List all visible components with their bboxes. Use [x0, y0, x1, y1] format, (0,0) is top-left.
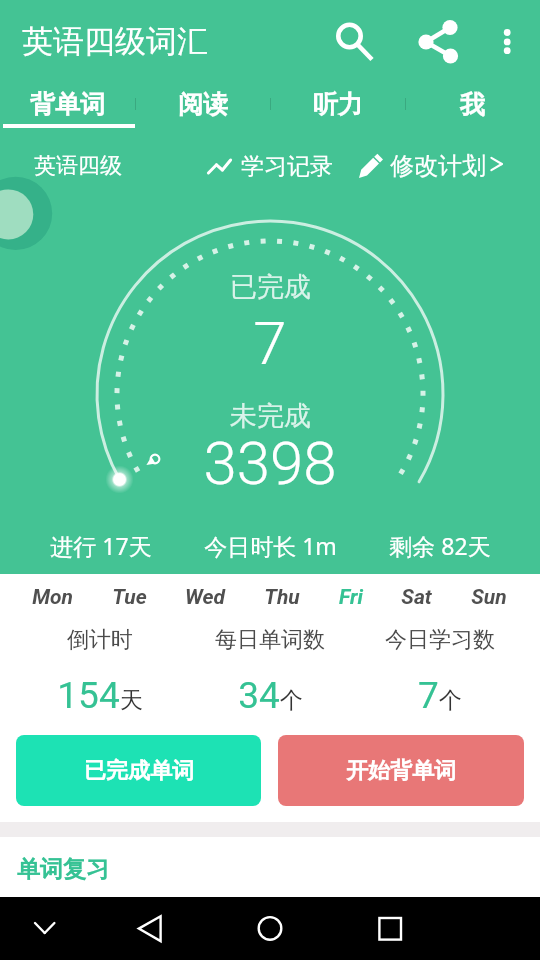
staticText: 已完成 [230, 270, 311, 304]
button[interactable]: 已完成单词 [16, 735, 261, 806]
staticText: 未完成 [230, 399, 311, 433]
staticText: 倒计时 [67, 626, 133, 654]
button[interactable]: 阅读 [135, 85, 270, 130]
staticText: 3398 [203, 428, 337, 488]
staticText: 进行 17天 [50, 530, 152, 561]
staticText: 剩余 82天 [389, 530, 491, 561]
staticText: Sat [401, 585, 432, 610]
button[interactable]: 修改计划 [353, 151, 486, 181]
staticText: 个 [280, 686, 303, 715]
staticText: 修改计划 [390, 151, 486, 181]
staticText: 阅读 [178, 89, 228, 120]
button[interactable]: Back [124, 903, 174, 953]
staticText: 7 [253, 308, 287, 368]
staticText: 单词复习 [17, 855, 109, 884]
staticText: Sun [471, 585, 507, 610]
staticText: 开始背单词 [346, 757, 456, 785]
staticText: 听力 [313, 89, 363, 120]
button[interactable]: 我 [405, 85, 540, 130]
staticText: Fri [339, 585, 363, 610]
button[interactable]: Home [245, 903, 295, 953]
button[interactable]: 背单词 [0, 85, 135, 130]
button[interactable]: Share [406, 12, 466, 72]
button[interactable]: Recent apps [365, 903, 415, 953]
staticText: 34 [238, 674, 280, 717]
button[interactable]: More options [483, 13, 531, 61]
staticText: 今日时长 1m [204, 530, 337, 561]
staticText: 天 [120, 686, 143, 715]
staticText: 7 [418, 674, 439, 717]
staticText: Thu [264, 585, 300, 610]
staticText: 我 [460, 89, 485, 120]
button[interactable]: Search [320, 13, 380, 73]
staticText: 英语四级 [34, 152, 122, 180]
button[interactable]: 听力 [270, 85, 405, 130]
staticText: 已完成单词 [84, 757, 194, 785]
staticText: 背单词 [30, 89, 105, 120]
button[interactable]: 学习记录 [201, 152, 333, 181]
staticText: 154 [57, 674, 120, 717]
staticText: 每日单词数 [215, 626, 325, 654]
staticText: Tue [112, 585, 147, 610]
staticText: Mon [32, 585, 73, 610]
staticText: Wed [185, 585, 225, 610]
button[interactable]: 开始背单词 [278, 735, 524, 806]
staticText: 今日学习数 [385, 626, 495, 654]
staticText: 个 [439, 686, 462, 715]
button[interactable]: Hide keyboard [20, 904, 70, 954]
staticText: 英语四级词汇 [22, 22, 208, 61]
staticText: 学习记录 [241, 152, 333, 181]
